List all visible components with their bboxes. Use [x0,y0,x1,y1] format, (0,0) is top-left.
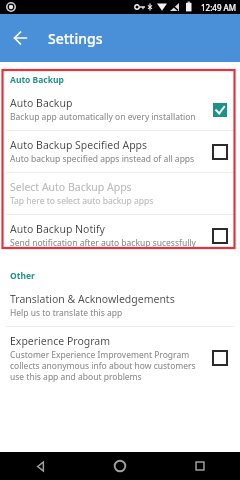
button[interactable]: Back [0,18,40,58]
staticText: 12:49 AM [201,2,237,13]
button[interactable]: Experience Program [0,327,240,389]
staticText: Auto Backup [10,74,64,86]
staticText: Tap here to select auto backup apps [10,195,154,207]
button[interactable]: Translation & Acknowledgements [0,285,240,326]
button[interactable]: Auto Backup Specified Apps [0,131,240,172]
staticText: Other [10,270,35,282]
staticText: Backup app automatically on every instal… [10,111,196,123]
staticText: Select Auto Backup Apps [10,180,132,194]
staticText: Auto backup specified apps instead of al… [10,153,195,165]
staticText: Experience Program [10,334,111,348]
button[interactable]: Auto Backup toggle [208,98,232,122]
staticText: Auto Backup Specified Apps [10,138,148,152]
staticText: Translation & Acknowledgements [10,292,175,306]
staticText: Customer Experience Improvement Program … [10,349,202,382]
button[interactable]: Auto Backup Notify [0,215,240,256]
button[interactable]: Back [0,452,80,480]
button[interactable]: Auto Backup Notify toggle [208,224,232,248]
staticText: Send notification after auto backup suce… [10,237,196,249]
staticText: Auto Backup Notify [10,222,105,236]
button[interactable]: Auto Backup [0,89,240,130]
button[interactable]: Recent apps [160,452,240,480]
button[interactable]: Auto Backup Specified Apps toggle [208,140,232,164]
staticText: Help us to translate this app [10,307,123,319]
button[interactable]: Experience Program toggle [208,346,232,370]
button[interactable]: Select Auto Backup Apps [0,173,240,214]
staticText: Settings [48,29,103,48]
staticText: Auto Backup [10,96,73,110]
button[interactable]: Home [80,452,160,480]
